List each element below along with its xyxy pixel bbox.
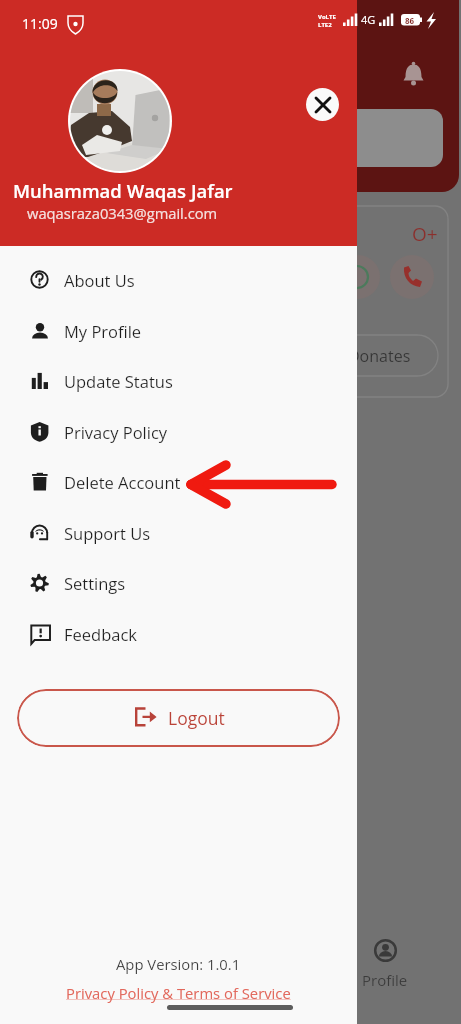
button[interactable]: Support Us xyxy=(0,508,357,558)
staticText: Feedback xyxy=(64,623,137,645)
staticText: O+ xyxy=(412,221,438,247)
staticText: Settings xyxy=(64,572,126,594)
staticText: Privacy Policy xyxy=(64,421,168,443)
staticText: waqasraza0343@gmail.com xyxy=(27,203,218,223)
staticText: About Us xyxy=(64,269,135,291)
button[interactable]: Feedback xyxy=(0,609,357,659)
button[interactable]: My Profile xyxy=(0,306,357,356)
staticText: Profile xyxy=(362,970,408,990)
staticText: Logout xyxy=(168,706,225,730)
staticText: VoLTE xyxy=(318,13,336,21)
staticText: 4G xyxy=(361,12,376,27)
staticText: 11:09 xyxy=(22,14,58,33)
button[interactable]: Update Status xyxy=(0,356,357,406)
button[interactable]: Delete Account xyxy=(0,457,357,507)
staticText: Muhammad Waqas Jafar xyxy=(13,178,233,203)
button[interactable]: Privacy Policy xyxy=(0,407,357,457)
button[interactable]: About Us xyxy=(0,255,357,305)
staticText: Update Status xyxy=(64,370,173,392)
staticText: Delete Account xyxy=(64,471,181,493)
staticText: App Version: 1.0.1 xyxy=(116,954,241,974)
staticText: Donates xyxy=(348,345,411,367)
button[interactable]: Logout xyxy=(17,689,340,747)
button[interactable]: Privacy Policy & Terms of Service xyxy=(66,983,291,1003)
button[interactable]: Profile xyxy=(357,939,412,1014)
staticText: LTE2 xyxy=(318,21,332,29)
button[interactable]: Close xyxy=(306,88,339,121)
button[interactable]: Settings xyxy=(0,558,357,608)
staticText: Support Us xyxy=(64,522,151,544)
staticText: 86 xyxy=(405,15,415,26)
staticText: My Profile xyxy=(64,320,142,342)
